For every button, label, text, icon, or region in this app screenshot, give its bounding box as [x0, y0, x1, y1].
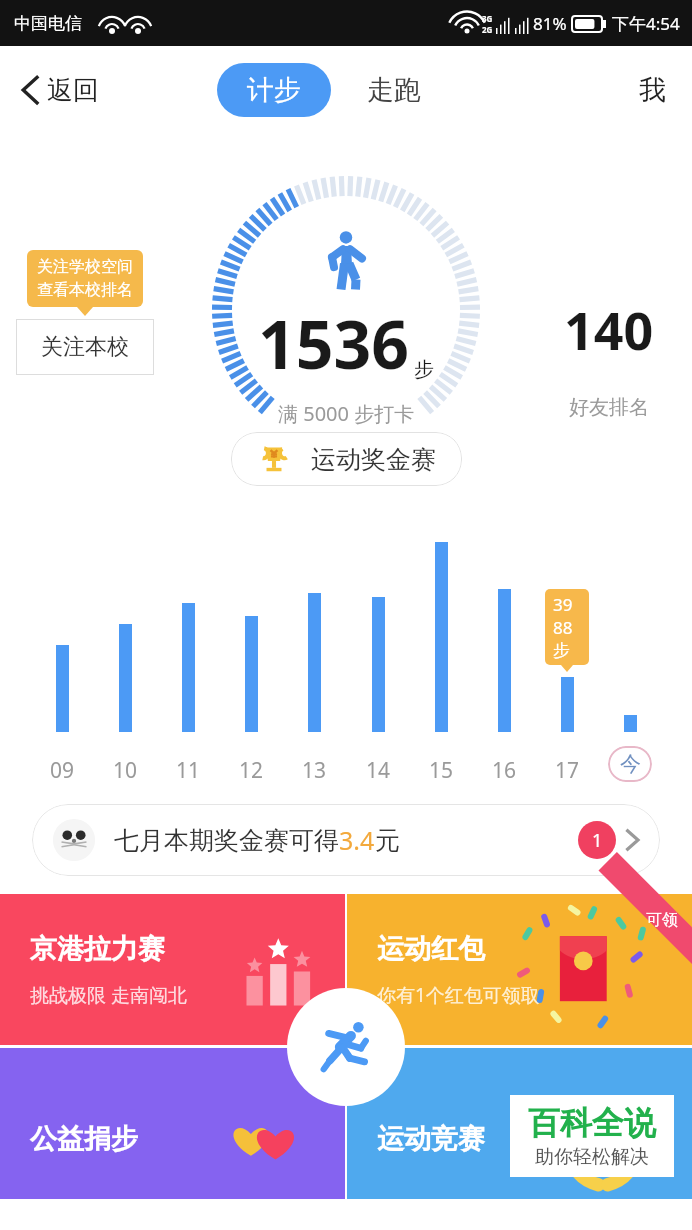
button[interactable]: 16 [482, 532, 526, 782]
button[interactable]: 返回 [14, 67, 103, 113]
staticText: 1 [592, 828, 603, 853]
staticText: 百科全说 [528, 1103, 656, 1143]
button[interactable]: 关注本校 [16, 319, 154, 375]
staticText: 今 [620, 751, 641, 777]
staticText: 运动奖金赛 [311, 444, 436, 475]
staticText: 我 [639, 73, 666, 107]
staticText: 关注学校空间 [37, 257, 133, 277]
button[interactable]: 走跑 [357, 63, 431, 117]
staticText: 09 [50, 756, 75, 782]
staticText: 1536 [258, 298, 410, 388]
button[interactable]: Start running [287, 988, 405, 1106]
button[interactable]: 运动红包 [347, 894, 692, 1045]
button[interactable]: 11 [166, 532, 210, 782]
staticText: 13 [302, 756, 327, 782]
staticText: 返回 [47, 74, 99, 107]
button[interactable]: 15 [419, 532, 463, 782]
staticText: 2G [482, 24, 493, 35]
staticText: 运动竞赛 [377, 1122, 485, 1156]
staticText: 可领 [646, 910, 678, 930]
staticText: 3G [482, 13, 493, 24]
button[interactable]: 七月本期奖金赛可得 [32, 804, 660, 876]
other: Walking [321, 230, 371, 292]
button[interactable]: 关注学校空间 [27, 250, 143, 307]
staticText: 关注本校 [41, 333, 129, 361]
staticText: 81% [533, 12, 567, 35]
button[interactable]: 09 [40, 532, 84, 782]
staticText: 走跑 [367, 73, 421, 107]
button[interactable]: 我 [631, 65, 674, 115]
button[interactable]: 计步 [217, 63, 331, 117]
staticText: 步 [414, 357, 434, 382]
button[interactable]: 京港拉力赛 [0, 894, 345, 1045]
staticText: 10 [113, 756, 138, 782]
staticText: 3.4 [339, 823, 375, 857]
staticText: 下午4:54 [612, 12, 680, 35]
staticText: 好友排名 [569, 395, 649, 420]
staticText: 140 [564, 294, 654, 365]
staticText: 中国电信 [14, 13, 82, 34]
button[interactable]: 3988步 [545, 532, 589, 782]
button[interactable]: 运动竞赛 [347, 1048, 692, 1199]
button[interactable]: 10 [103, 532, 147, 782]
staticText: 运动红包 [377, 932, 485, 966]
button[interactable]: 公益捐步 [0, 1048, 345, 1199]
staticText: 11 [176, 756, 201, 782]
staticText: 挑战极限 走南闯北 [30, 982, 187, 1008]
staticText: 满 5000 步打卡 [278, 400, 415, 427]
staticText: 16 [492, 756, 517, 782]
button[interactable]: 13 [292, 532, 336, 782]
staticText: 元 [375, 825, 400, 856]
button[interactable]: 12 [229, 532, 273, 782]
staticText: 你有1个红包可领取 [377, 982, 540, 1008]
button[interactable]: 14 [356, 532, 400, 782]
staticText: 14 [366, 756, 391, 782]
staticText: 查看本校排名 [37, 280, 133, 300]
staticText: 3988步 [553, 593, 581, 661]
staticText: 12 [239, 756, 264, 782]
staticText: 计步 [247, 73, 301, 107]
button[interactable]: 运动奖金赛 [231, 432, 462, 486]
button[interactable]: 今 [608, 532, 652, 782]
staticText: 17 [555, 756, 580, 782]
staticText: 七月本期奖金赛可得 [114, 825, 339, 856]
staticText: 公益捐步 [30, 1122, 138, 1156]
staticText: 助你轻松解决 [535, 1145, 649, 1169]
staticText: 京港拉力赛 [30, 932, 165, 966]
staticText: 15 [429, 756, 454, 782]
